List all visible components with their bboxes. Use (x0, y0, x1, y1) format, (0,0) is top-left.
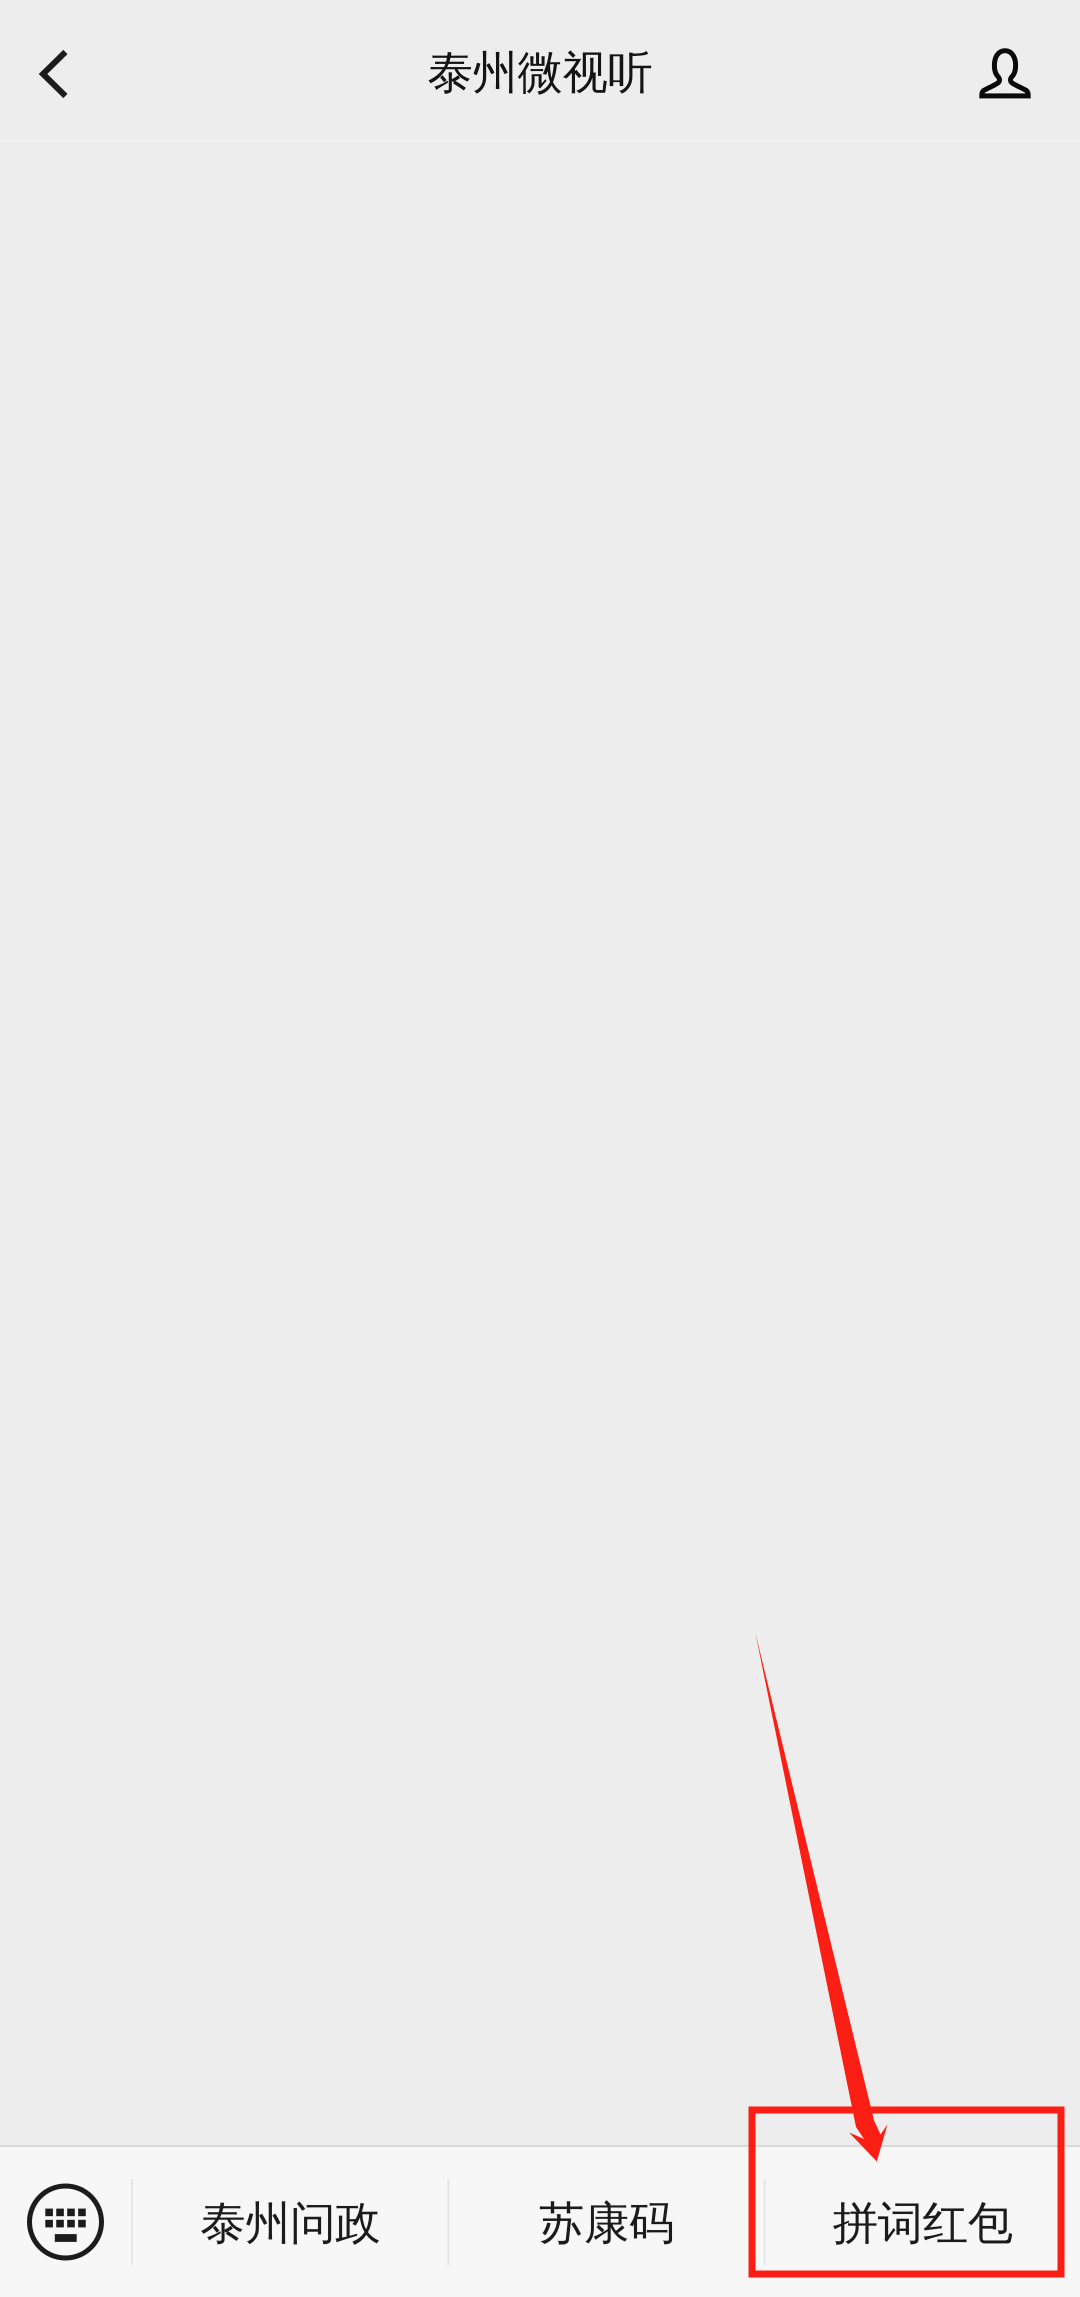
button[interactable]: 泰州问政 (133, 2147, 447, 2297)
staticText: 苏康码 (539, 2196, 674, 2251)
button[interactable]: 切换到键盘 (0, 2147, 131, 2297)
staticText: 泰州问政 (200, 2196, 380, 2251)
button[interactable]: 返回 (0, 0, 102, 139)
button[interactable]: 公众号资料 (949, 0, 1080, 139)
button[interactable]: 苏康码 (449, 2147, 764, 2297)
button[interactable]: 拼词红包 (766, 2147, 1080, 2297)
staticText: 拼词红包 (833, 2196, 1013, 2251)
staticText: 泰州微视听 (427, 45, 652, 101)
